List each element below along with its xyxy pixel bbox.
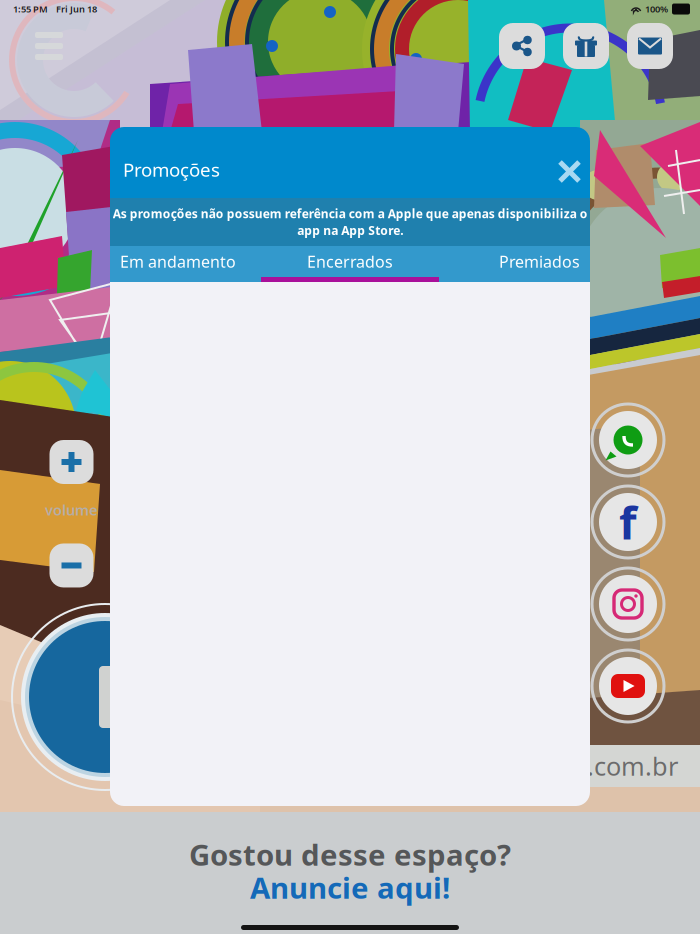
button[interactable]: Encerrados <box>270 246 430 277</box>
button[interactable]: Premiados <box>430 246 590 277</box>
staticText: 1:55 PM <box>13 3 48 15</box>
staticText: As promoções não possuem referência com … <box>112 206 587 221</box>
staticText: Em andamento <box>120 251 236 272</box>
button[interactable]: Menu <box>24 23 74 69</box>
staticText: Premiados <box>499 251 580 272</box>
staticText: 100% <box>645 3 668 15</box>
staticText: Promoções <box>123 157 220 182</box>
button[interactable]: Share <box>499 23 545 69</box>
staticText: Gostou desse espaço? <box>189 835 511 874</box>
button[interactable]: Gostou desse espaço? <box>0 833 700 909</box>
staticText: Encerrados <box>307 251 393 272</box>
staticText: app na App Store. <box>297 222 403 238</box>
staticText: .com.br <box>587 749 678 783</box>
staticText: f <box>619 492 637 552</box>
button[interactable]: Close <box>549 151 590 192</box>
button[interactable]: Mail <box>627 23 673 69</box>
button[interactable]: Volume down <box>49 543 93 587</box>
staticText: volume <box>45 500 98 519</box>
button[interactable]: Gifts <box>563 23 609 69</box>
button[interactable]: Em andamento <box>110 246 270 277</box>
button[interactable]: Volume up <box>49 440 93 484</box>
staticText: Fri Jun 18 <box>56 3 97 15</box>
staticText: Anuncie aqui! <box>250 868 450 907</box>
